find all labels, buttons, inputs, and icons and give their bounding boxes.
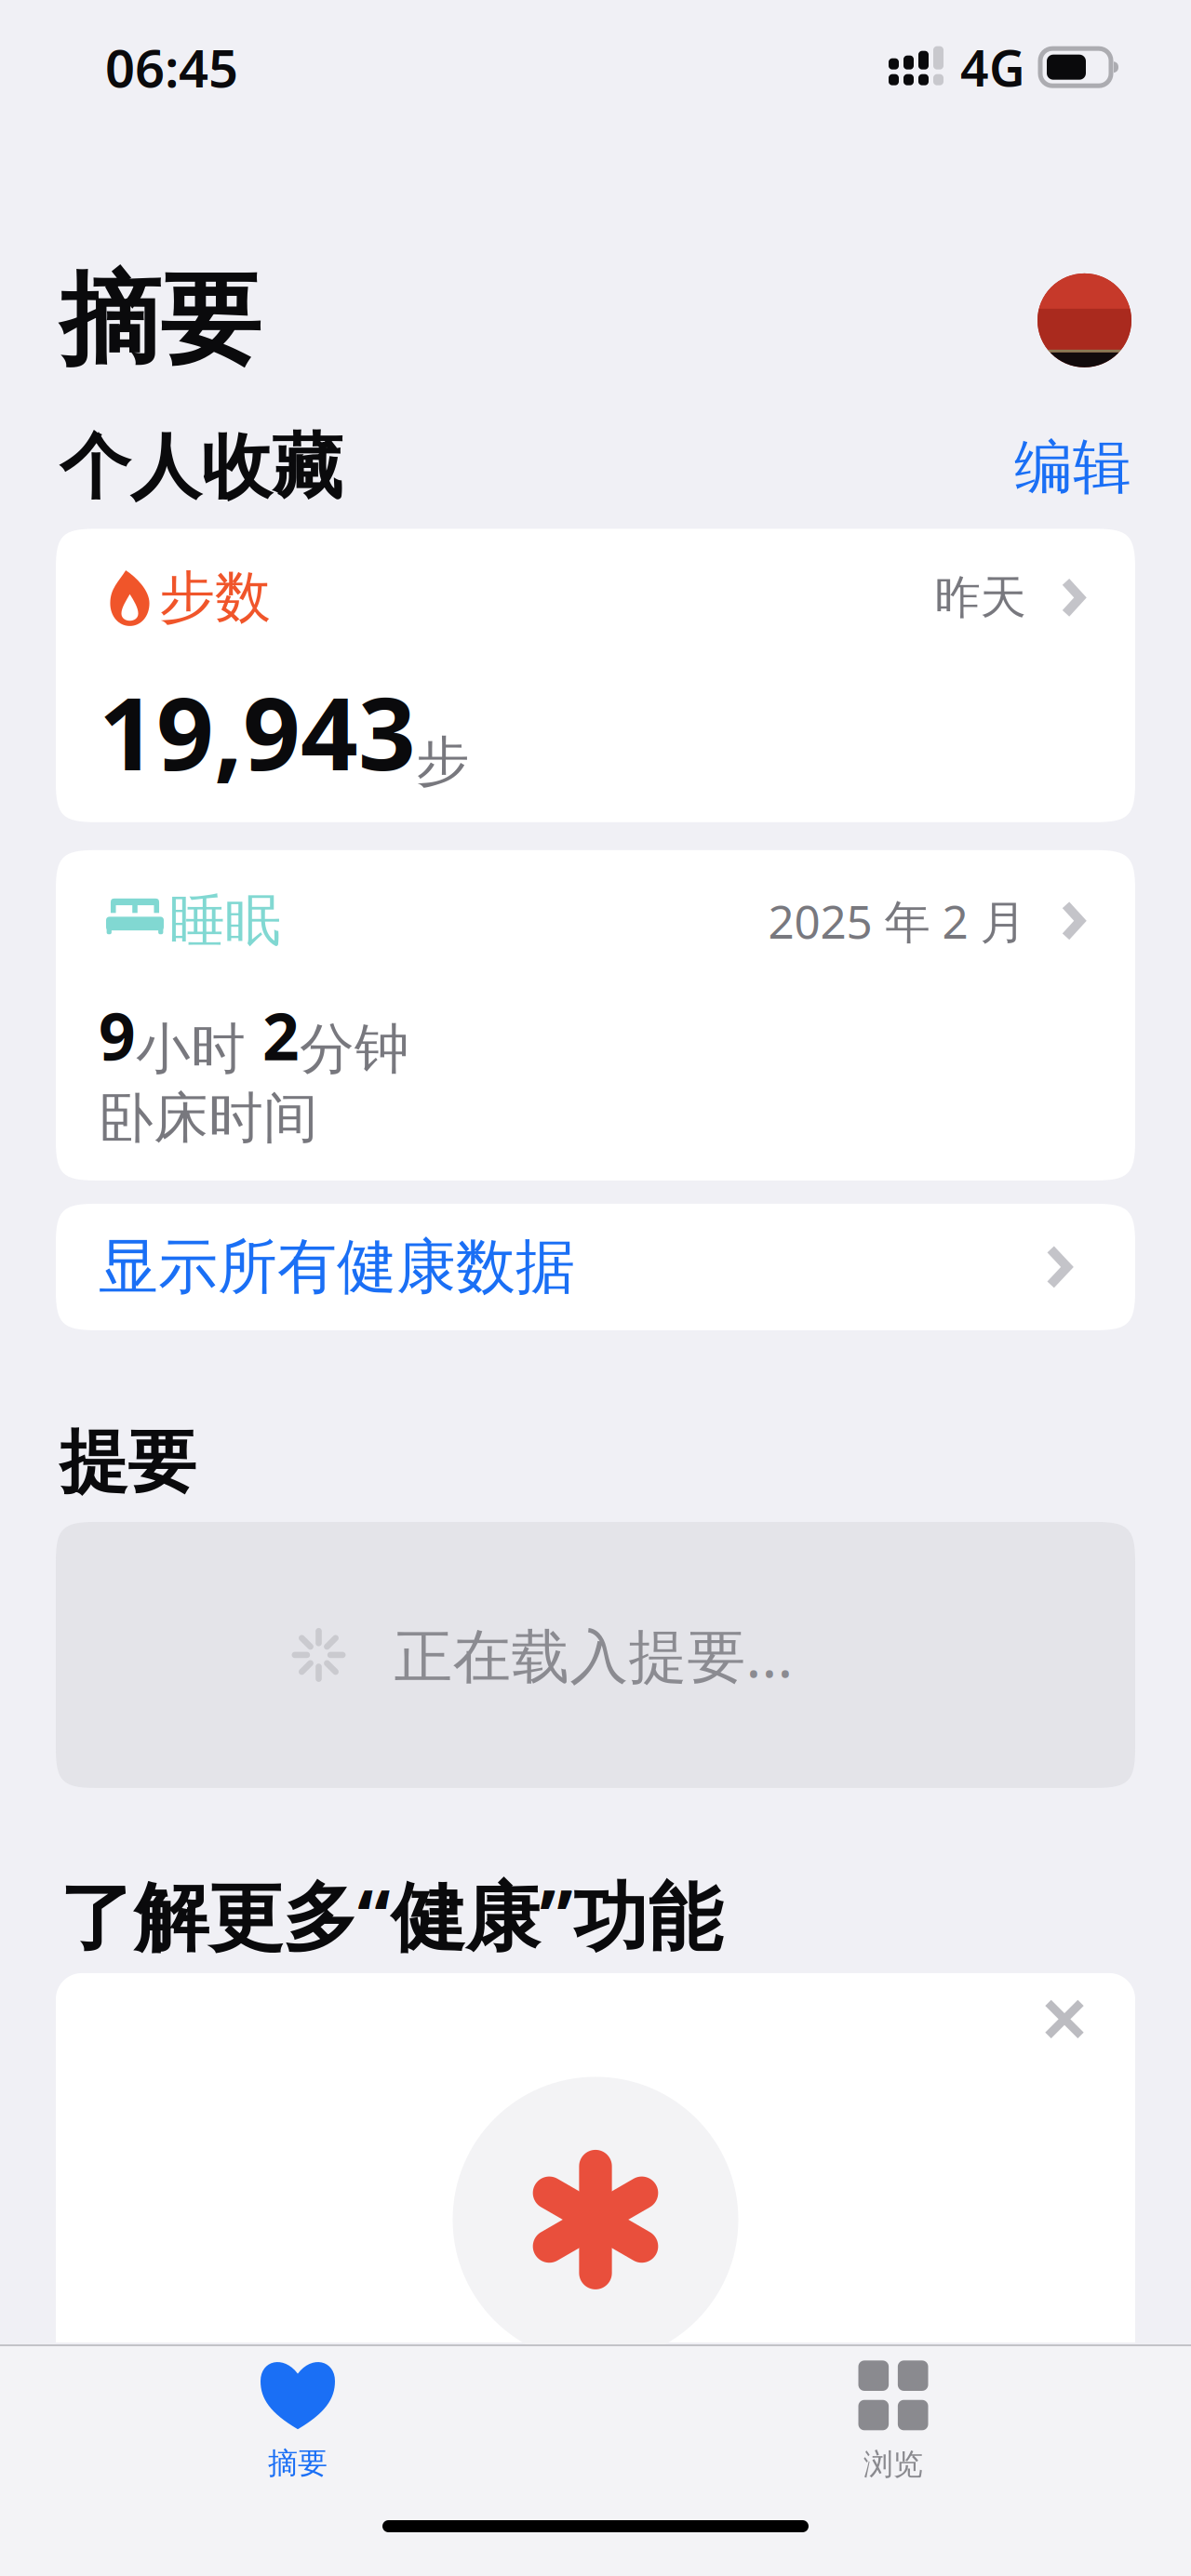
staticText: 卧床时间 (99, 1085, 318, 1152)
staticText: 了解更多“健康”功能 (60, 1866, 722, 1965)
staticText: 正在载入提要... (394, 1616, 793, 1694)
staticText: 提要 (60, 1420, 195, 1504)
button[interactable]: 摘要 (0, 2356, 595, 2487)
button[interactable]: 浏览 (595, 2356, 1191, 2487)
staticText: 2025 年 2 月 (768, 890, 1026, 951)
button[interactable]: 显示所有健康数据 (56, 1204, 1135, 1330)
staticText: 分钟 (300, 1016, 409, 1083)
staticText: 06:45 (105, 33, 238, 102)
staticText: 小时 (136, 1016, 246, 1083)
button[interactable]: 步数 (56, 529, 1135, 822)
staticText: 摘要 (268, 2445, 328, 2482)
button[interactable]: 编辑 (1014, 432, 1131, 503)
staticText: 步数 (159, 563, 271, 632)
staticText: 浏览 (863, 2446, 923, 2483)
button[interactable]: 关闭 (1024, 1978, 1105, 2060)
staticText: 4G (960, 34, 1025, 100)
staticText: 编辑 (1014, 432, 1131, 503)
staticText: 昨天 (935, 569, 1026, 626)
staticText: 睡眠 (169, 886, 281, 955)
staticText: 摘要 (60, 259, 261, 382)
staticText: 2 (246, 992, 300, 1078)
button[interactable]: 个人资料 (1037, 273, 1131, 367)
staticText: 9 (99, 992, 136, 1078)
button[interactable]: 睡眠 (56, 850, 1135, 1180)
staticText: 个人收藏 (60, 424, 342, 511)
staticText: 19,943 (99, 665, 416, 798)
staticText: 显示所有健康数据 (99, 1230, 575, 1304)
staticText: 步 (416, 729, 469, 794)
